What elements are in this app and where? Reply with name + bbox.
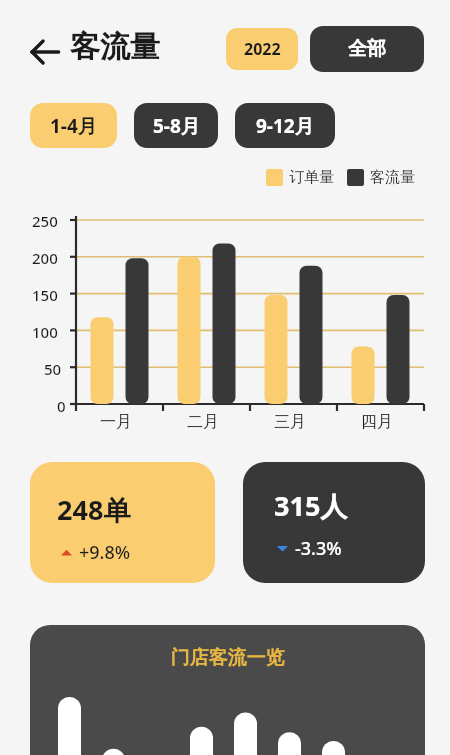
staticText: 客流量 bbox=[370, 168, 415, 187]
staticText: 门店客流一览 bbox=[30, 646, 425, 670]
staticText: 100 bbox=[32, 322, 58, 342]
staticText: 订单量 bbox=[289, 168, 334, 187]
button[interactable]: 5-8月 bbox=[134, 103, 218, 148]
button[interactable]: 门店客流一览 bbox=[30, 625, 425, 755]
staticText: 9-12月 bbox=[256, 113, 314, 139]
staticText: 150 bbox=[32, 285, 58, 305]
staticText: 四月 bbox=[361, 412, 393, 432]
button[interactable]: Back bbox=[26, 33, 64, 71]
staticText: 5-8月 bbox=[153, 113, 200, 139]
staticText: 一月 bbox=[100, 412, 132, 432]
staticText: -3.3% bbox=[295, 536, 342, 561]
staticText: 248单 bbox=[57, 491, 131, 528]
staticText: 2022 bbox=[244, 38, 281, 60]
button[interactable]: 2022 bbox=[226, 28, 298, 70]
button[interactable]: 9-12月 bbox=[235, 103, 335, 148]
button[interactable]: 1-4月 bbox=[30, 103, 117, 148]
staticText: 315人 bbox=[274, 487, 348, 524]
staticText: +9.8% bbox=[79, 540, 131, 565]
staticText: 全部 bbox=[348, 37, 386, 61]
button[interactable]: 全部 bbox=[310, 26, 424, 72]
staticText: 1-4月 bbox=[50, 113, 97, 139]
staticText: 二月 bbox=[187, 412, 219, 432]
button[interactable]: 315人 bbox=[243, 462, 425, 583]
staticText: 三月 bbox=[274, 412, 306, 432]
staticText: 客流量 bbox=[70, 28, 160, 66]
button[interactable]: 248单 bbox=[30, 462, 215, 583]
staticText: 250 bbox=[32, 211, 58, 231]
staticText: 0 bbox=[57, 396, 66, 416]
staticText: 200 bbox=[32, 248, 58, 268]
staticText: 50 bbox=[44, 359, 62, 379]
